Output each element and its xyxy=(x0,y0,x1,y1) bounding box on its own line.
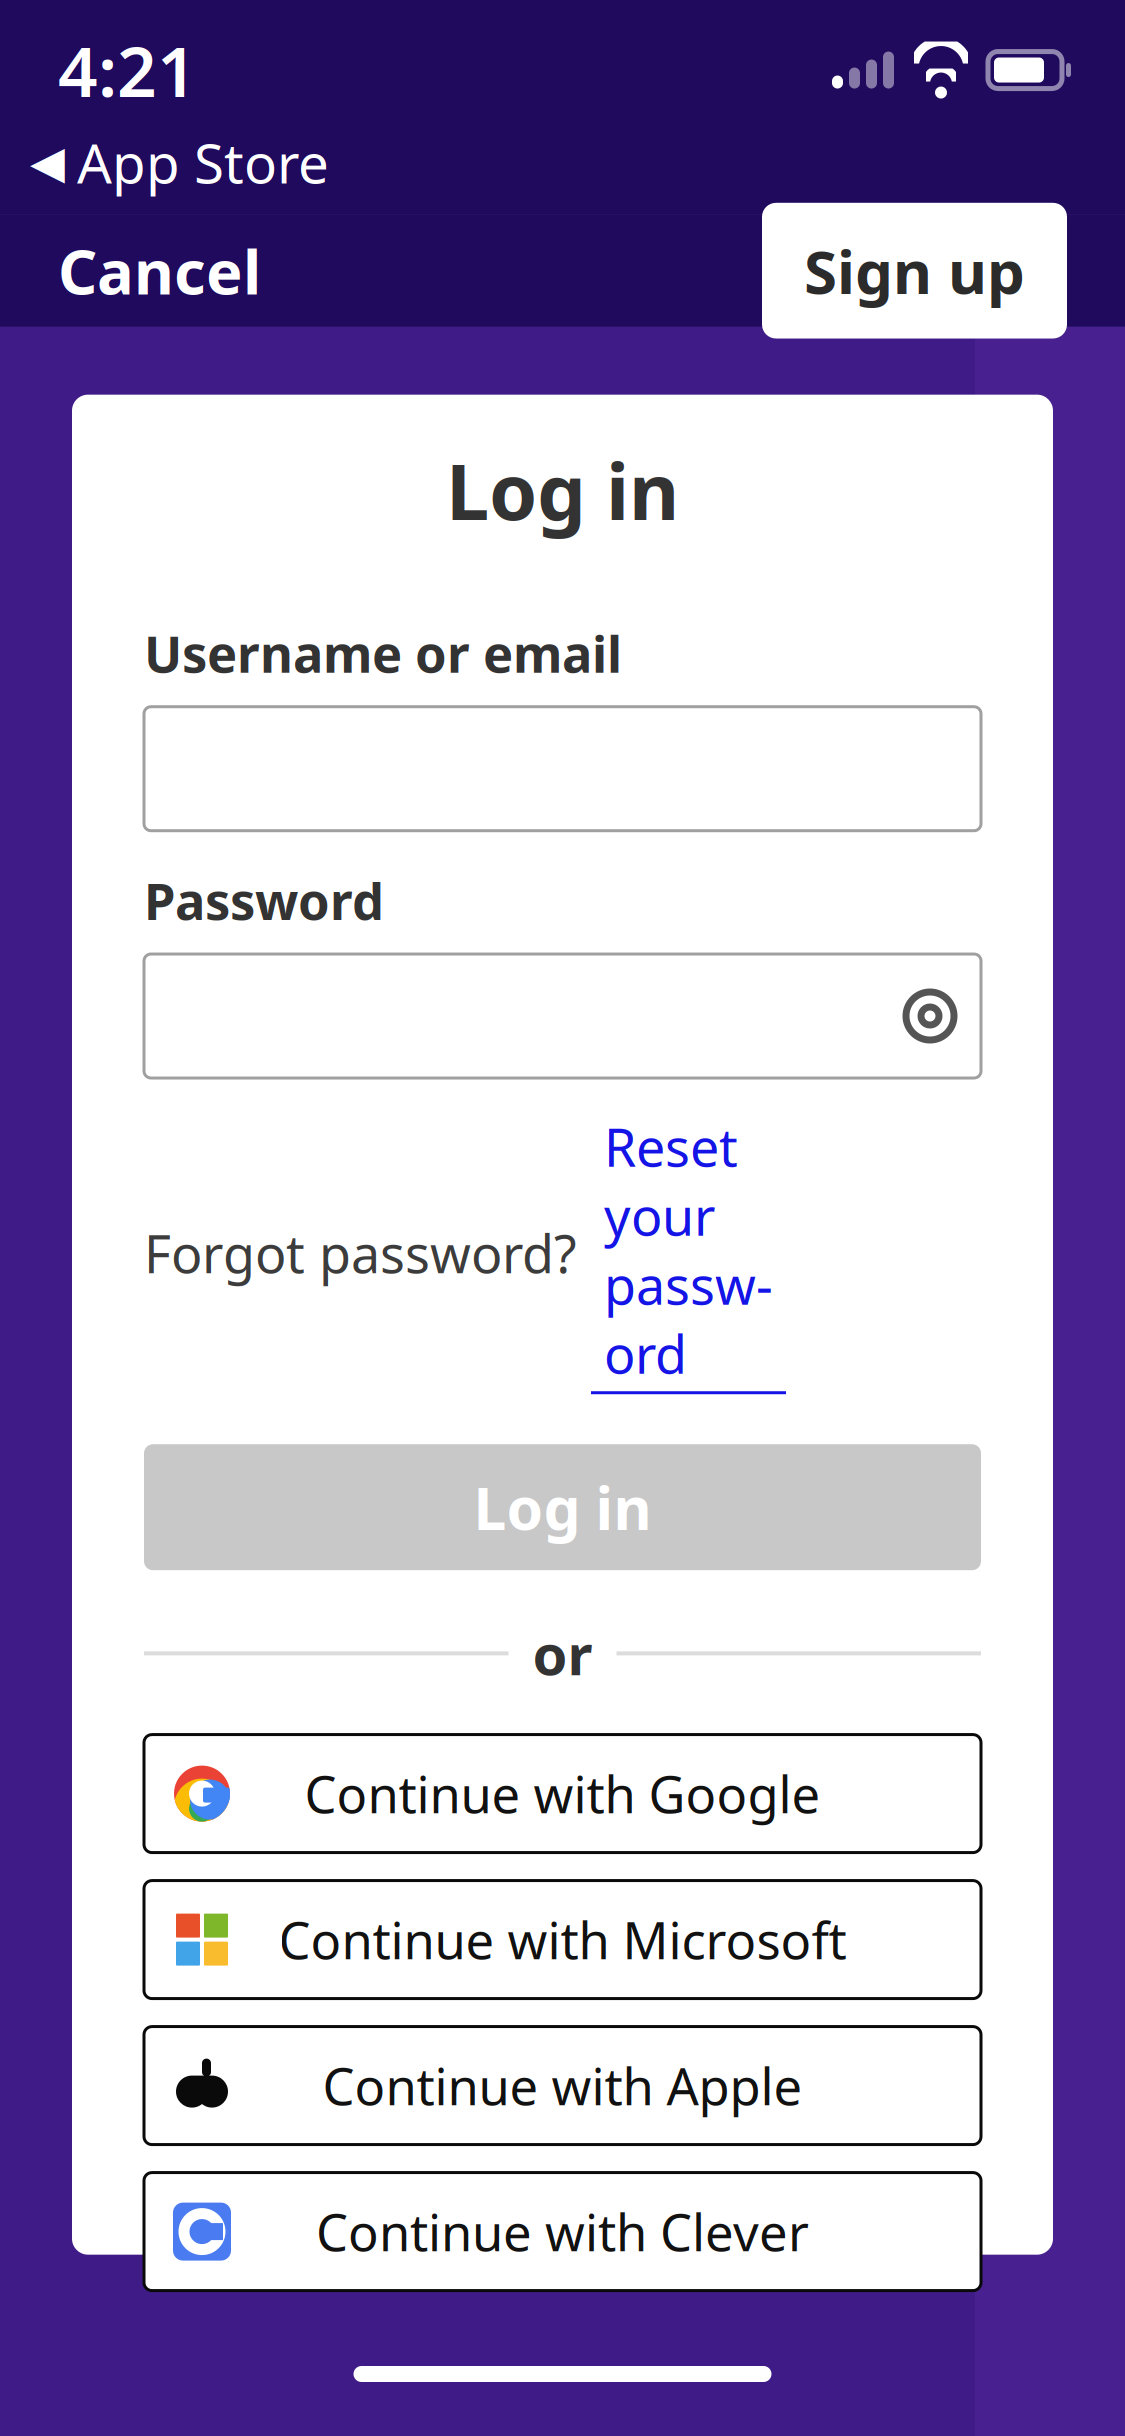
button[interactable]: Continue with Google xyxy=(144,1735,981,1853)
staticText: or xyxy=(532,1616,592,1691)
staticText: Forgot password? xyxy=(144,1219,591,1288)
staticText: Reset your password xyxy=(604,1112,773,1388)
button[interactable]: Log in xyxy=(144,1444,981,1570)
button[interactable]: Reset your password xyxy=(591,1112,786,1394)
staticText: Log in xyxy=(473,1468,651,1546)
staticText: Continue with Clever xyxy=(316,2198,809,2265)
staticText: Username or email xyxy=(144,619,622,687)
button[interactable]: Continue with Clever xyxy=(144,2173,981,2291)
staticText: Continue with Apple xyxy=(322,2052,802,2119)
button[interactable]: Cancel xyxy=(0,200,319,341)
staticText: Continue with Microsoft xyxy=(278,1906,846,1973)
staticText: Continue with Google xyxy=(304,1760,820,1827)
button[interactable]: Show password xyxy=(879,954,981,1078)
button[interactable]: Sign up xyxy=(762,203,1067,338)
staticText: ◀ xyxy=(30,137,65,188)
staticText: App Store xyxy=(77,126,329,199)
staticText: 4:21 xyxy=(58,24,197,116)
staticText: Sign up xyxy=(804,231,1025,310)
staticText: Password xyxy=(144,867,384,934)
button[interactable]: Continue with Apple xyxy=(144,2027,981,2145)
button[interactable]: Continue with Microsoft xyxy=(144,1881,981,1999)
staticText: Cancel xyxy=(58,230,261,311)
staticText: Log in xyxy=(446,439,679,541)
